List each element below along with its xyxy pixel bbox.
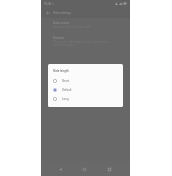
staticText: Long <box>62 97 69 101</box>
button[interactable]: Home <box>78 163 90 176</box>
staticText: Short <box>62 79 70 83</box>
staticText: Duration <box>53 36 64 40</box>
button[interactable]: Recent apps <box>103 163 115 176</box>
button[interactable]: Long <box>48 95 123 103</box>
button[interactable]: Guest access <box>53 21 127 29</box>
staticText: Guest access <box>53 21 69 25</box>
button[interactable]: Default <box>48 86 123 94</box>
button[interactable]: Duration <box>53 36 127 46</box>
button[interactable]: Short <box>48 77 123 85</box>
staticText: 10:30 <box>44 2 52 6</box>
button[interactable]: Navigate up <box>43 8 52 18</box>
button[interactable]: Back <box>54 163 66 176</box>
staticText: Slide settings <box>53 11 71 15</box>
staticText: Default <box>62 88 72 92</box>
staticText: Slide length <box>53 69 69 73</box>
